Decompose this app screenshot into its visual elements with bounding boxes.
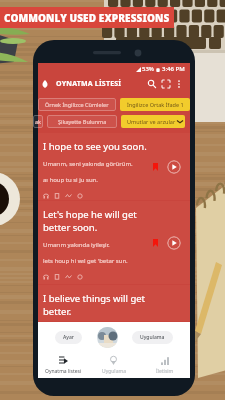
button[interactable]: Ayar [55, 331, 82, 344]
staticText: COMMONLY USED EXPRESSIONS [4, 11, 170, 25]
staticText: OYNATMA LİSTESİ [56, 79, 122, 89]
staticText: Let's hope he will get [43, 208, 137, 221]
button[interactable]: Şikayette Bulunma [47, 115, 117, 128]
staticText: Oynatma listesi [45, 368, 82, 375]
button[interactable]: I believe things will get [38, 285, 190, 321]
button[interactable]: Uygulama [88, 352, 139, 378]
button[interactable]: Profile [97, 327, 118, 348]
button[interactable]: Translate [65, 273, 72, 280]
button[interactable]: ak [33, 115, 43, 128]
button[interactable]: Listen [43, 193, 49, 199]
staticText: better. [43, 305, 72, 318]
button[interactable]: Share [77, 274, 83, 280]
staticText: 53% [142, 65, 154, 73]
button[interactable]: Play [167, 236, 181, 250]
staticText: aı houp tu si ju sun. [43, 176, 98, 184]
staticText: Ayar [63, 334, 74, 341]
button[interactable]: Share [77, 193, 83, 199]
staticText: Umutlar ve arzular [127, 118, 176, 125]
button[interactable]: Bookmark [153, 163, 158, 171]
staticText: Uygulama [140, 334, 165, 341]
staticText: I believe things will get [43, 292, 146, 305]
button[interactable]: İletisim [139, 352, 190, 378]
staticText: Örnek İngilizce Cümleler [45, 101, 109, 108]
button[interactable]: Oynatma listesi [38, 352, 88, 378]
staticText: Umarım yakında iyileşir. [43, 241, 110, 249]
button[interactable]: Örnek İngilizce Cümleler [38, 98, 116, 111]
button[interactable]: Copy [54, 274, 60, 280]
staticText: better soon. [43, 221, 98, 234]
staticText: I hope to see you soon. [43, 140, 147, 153]
button[interactable]: İngilizce Ortak İfade 1 [120, 98, 190, 111]
staticText: ak [35, 118, 42, 125]
staticText: 3:46 PM [162, 65, 185, 73]
staticText: İletisim [156, 368, 174, 375]
staticText: Uygulama [102, 368, 126, 375]
button[interactable]: Scan [160, 78, 172, 90]
button[interactable]: Umutlar ve arzular [121, 115, 185, 128]
button[interactable]: Translate [65, 192, 72, 199]
staticText: İngilizce Ortak İfade 1 [127, 101, 184, 108]
staticText: Şikayette Bulunma [58, 118, 107, 125]
staticText: Umarım, seni yakında görürüm. [43, 160, 133, 168]
button[interactable]: Uygulama [132, 331, 173, 344]
button[interactable]: Listen [43, 274, 49, 280]
button[interactable]: Search [146, 78, 158, 90]
button[interactable]: I hope to see you soon. [38, 133, 190, 200]
button[interactable]: Copy [54, 193, 60, 199]
button[interactable]: Let's hope he will get [38, 201, 190, 284]
button[interactable]: Play [167, 160, 181, 174]
staticText: lets houp hi wıl get 'betar sun. [43, 257, 128, 265]
button[interactable]: Bookmark [153, 239, 158, 247]
button[interactable]: More options [173, 78, 185, 90]
